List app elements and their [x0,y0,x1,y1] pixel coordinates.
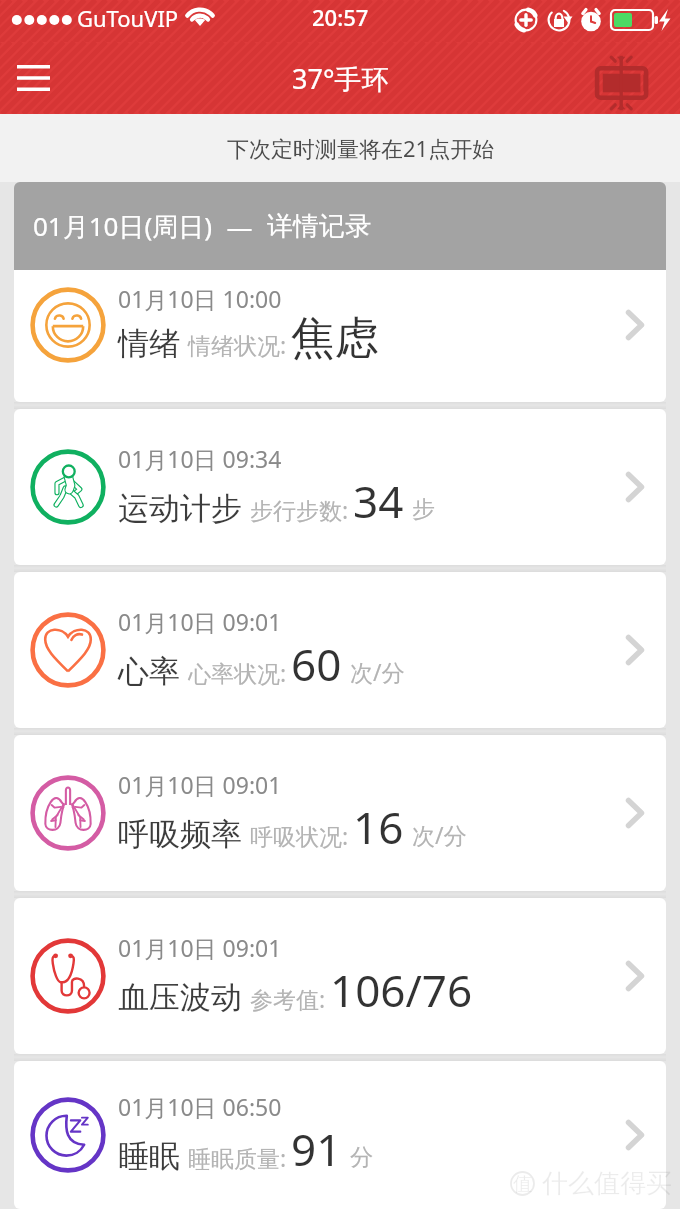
staticText: 01月10日 09:01 [118,769,282,800]
staticText: 20:57 [312,2,369,32]
staticText: 运动计步 [118,489,242,528]
staticText: 次/分 [350,656,405,687]
staticText: 01月10日(周日) [33,208,213,244]
staticText: 呼吸频率 [118,815,242,854]
staticText: 01月10日 09:34 [118,443,282,474]
staticText: 60 [291,634,342,694]
button[interactable]: Menu [4,49,62,107]
staticText: 情绪状况: [188,329,287,360]
staticText: GuTouVIP [77,3,179,33]
staticText: 01月10日 09:01 [118,606,282,637]
staticText: 次/分 [412,819,467,850]
staticText: 参考值: [250,983,326,1014]
staticText: 心率状况: [188,657,287,688]
staticText: 01月10日 09:01 [118,932,282,963]
button[interactable]: Band device [600,42,680,114]
staticText: 详情记录 [267,210,371,243]
staticText: 34 [353,471,404,531]
staticText: 106/76 [330,960,473,1020]
staticText: 步 [412,495,435,524]
button[interactable]: 01月10日 09:01 [14,735,666,891]
staticText: — [213,209,267,244]
staticText: 步行步数: [250,494,349,525]
staticText: 值 [513,1172,532,1196]
staticText: 情绪 [118,324,180,363]
staticText: 91 [291,1119,342,1179]
button[interactable]: 01月10日 09:01 [14,572,666,728]
staticText: 血压波动 [118,978,242,1017]
staticText: 下次定时测量将在21点开始 [227,133,495,163]
staticText: 分 [350,1143,373,1172]
staticText: 心率 [118,652,180,691]
staticText: 呼吸状况: [250,820,349,851]
staticText: 37°手环 [292,60,389,97]
button[interactable]: 01月10日 09:34 [14,409,666,565]
staticText: 01月10日 06:50 [118,1091,282,1122]
button[interactable]: 01月10日 06:50 [14,1061,666,1209]
staticText: 01月10日 10:00 [118,283,282,314]
staticText: 睡眠 [118,1137,180,1176]
button[interactable]: 01月10日(周日) [14,182,666,270]
button[interactable]: 01月10日 10:00 [14,270,666,402]
staticText: 睡眠质量: [188,1142,287,1173]
button[interactable]: 01月10日 09:01 [14,898,666,1054]
staticText: 焦虑 [291,311,379,366]
staticText: 16 [353,797,404,857]
staticText: 什么值得买 [542,1167,672,1200]
